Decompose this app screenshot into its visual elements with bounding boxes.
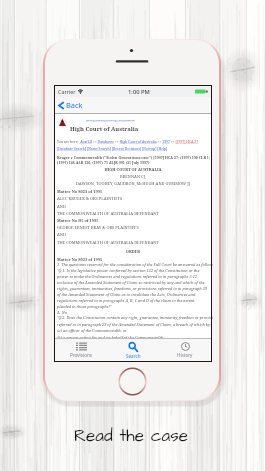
staticText: (b) a person acting for and on behalf of… bbox=[57, 335, 165, 340]
staticText: ORDER bbox=[55, 249, 211, 254]
other: Provisions bbox=[76, 342, 87, 351]
staticText: Matter No S023 of 1995 bbox=[57, 257, 103, 262]
button[interactable]: Back bbox=[58, 97, 83, 113]
staticText: GEORGE ERNEST BRAY & ORS PLAINTIFFS bbox=[57, 225, 139, 231]
staticText: Back bbox=[66, 100, 83, 110]
staticText: [Home][Databases][WorldLII][Search][Feed… bbox=[86, 119, 135, 122]
staticText: A. No. bbox=[57, 310, 68, 315]
staticText: Kruger v Commonwealth ("Stolen Generatio… bbox=[57, 155, 210, 160]
staticText: (a) an officer of the Commonwealth; or bbox=[57, 328, 127, 333]
other: Home bbox=[118, 367, 147, 396]
staticText: BRENNAN CJ, bbox=[55, 174, 211, 180]
staticText: History bbox=[177, 352, 193, 358]
staticText: Provisions bbox=[70, 352, 92, 358]
staticText: 1:00 PM bbox=[128, 88, 150, 96]
staticText: Carrier bbox=[58, 88, 76, 95]
staticText: Matter No S023 of 1995 bbox=[57, 189, 103, 194]
staticText: 1. The questions reserved for the consid… bbox=[57, 262, 213, 267]
other: Search bbox=[128, 342, 138, 352]
button[interactable]: History bbox=[159, 339, 211, 361]
other: History bbox=[181, 342, 190, 351]
staticText: AND bbox=[57, 232, 66, 238]
staticText: DAWSON, TOOHEY, GAUDRON, McHUGH AND GUMM… bbox=[55, 181, 211, 187]
staticText: "Q.2. Does the Constitution contain any … bbox=[57, 315, 213, 320]
staticText: THE COMMONWEALTH OF AUSTRALIA DEFENDANT bbox=[57, 211, 159, 217]
staticText: referred to in paragraph 29 of the Amend… bbox=[57, 322, 212, 327]
button[interactable]: Provisions bbox=[55, 339, 107, 361]
staticText: "Q.1. Is the legislative power conferred… bbox=[57, 268, 208, 309]
staticText: [Database Search] [Name Search] [Recent … bbox=[57, 146, 168, 151]
staticText: THE COMMONWEALTH OF AUSTRALIA DEFENDANT bbox=[57, 240, 159, 246]
staticText: (1997) 146 ALR 126; (1997) 71 ALJR 991 (… bbox=[57, 160, 150, 165]
button[interactable]: Search bbox=[107, 339, 159, 361]
staticText: Search bbox=[126, 353, 141, 359]
staticText: Matter No D5 of 1995 bbox=[57, 218, 99, 223]
staticText: AND bbox=[57, 204, 66, 210]
staticText: You are here: AustLII >> Databases >> Hi… bbox=[57, 139, 199, 144]
staticText: ALEC KRUGER & ORS PLAINTIFFS bbox=[57, 196, 123, 202]
staticText: Read the case bbox=[74, 424, 188, 448]
staticText: HIGH COURT OF AUSTRALIA bbox=[55, 167, 211, 172]
staticText: High Court of Australia bbox=[70, 125, 139, 133]
